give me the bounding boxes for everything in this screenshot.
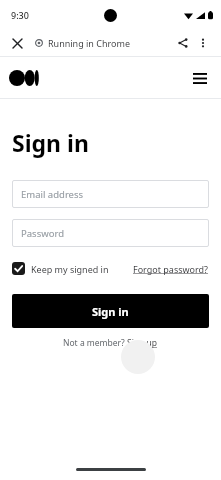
staticText: Sign in (12, 127, 89, 158)
button[interactable]: Sign up (127, 337, 158, 349)
staticText: Running in Chrome (48, 37, 130, 49)
button[interactable]: Email address (12, 180, 209, 208)
staticText: Sign in (92, 304, 129, 319)
button[interactable]: Password (12, 219, 209, 247)
button[interactable]: Keep my signed in (12, 259, 109, 278)
button[interactable]: Menu (188, 66, 212, 90)
button[interactable]: Sign in (12, 294, 209, 328)
button[interactable]: Forgot password? (133, 260, 209, 278)
staticText: Password (21, 227, 64, 240)
staticText: Not a member? (63, 337, 127, 349)
staticText: Forgot password? (133, 263, 209, 275)
staticText: Sign up (127, 337, 158, 349)
staticText: Keep my signed in (31, 263, 109, 275)
button[interactable]: Medium home (9, 70, 47, 86)
button[interactable]: Close (8, 34, 26, 52)
button[interactable]: Share (173, 33, 193, 53)
button[interactable]: More options (193, 33, 213, 53)
staticText: Email address (21, 188, 84, 201)
staticText: 9:30 (11, 9, 29, 21)
